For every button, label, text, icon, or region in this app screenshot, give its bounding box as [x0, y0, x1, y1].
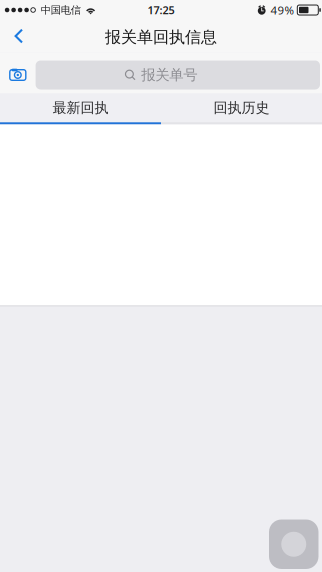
- button[interactable]: Back: [0, 20, 38, 52]
- button[interactable]: Scan: [0, 60, 36, 89]
- staticText: 回执历史: [213, 99, 269, 117]
- button[interactable]: 报关单号: [36, 60, 320, 89]
- button[interactable]: 回执历史: [161, 93, 322, 124]
- staticText: 49%: [270, 2, 294, 18]
- staticText: 最新回执: [52, 99, 108, 117]
- staticText: 中国电信: [41, 3, 81, 16]
- staticText: 报关单号: [141, 66, 197, 84]
- button[interactable]: AssistiveTouch: [269, 519, 318, 569]
- staticText: 报关单回执信息: [105, 27, 217, 47]
- button[interactable]: 最新回执: [0, 93, 161, 124]
- staticText: 17:25: [147, 3, 174, 17]
